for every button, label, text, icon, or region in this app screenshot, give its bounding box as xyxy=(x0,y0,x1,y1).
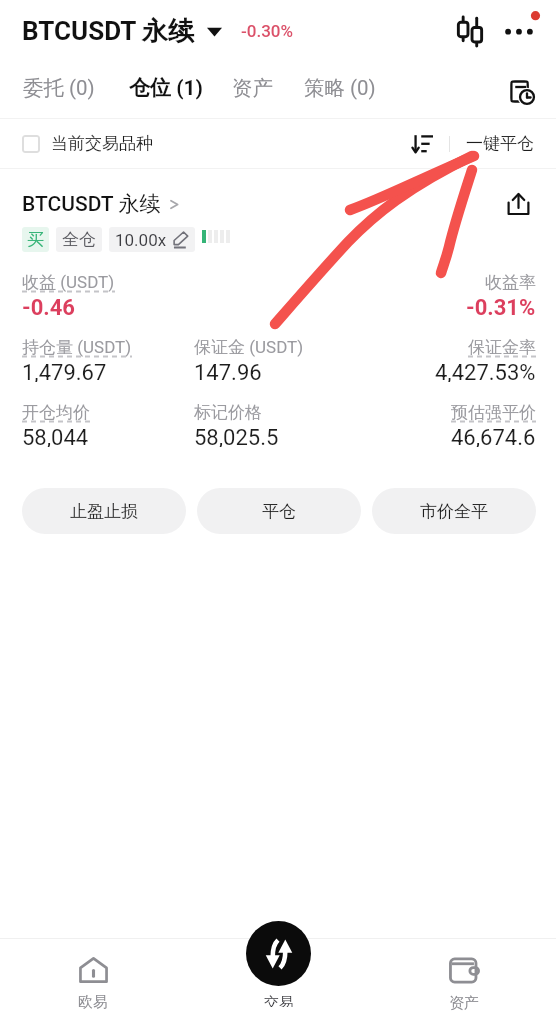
button[interactable]: Sort xyxy=(405,127,439,161)
button[interactable]: 仓位 (1) xyxy=(123,67,209,109)
staticText: 保证金率 xyxy=(468,337,536,358)
button[interactable]: 委托 (0) xyxy=(17,67,101,109)
button[interactable]: 资产 xyxy=(371,939,556,1021)
staticText: 交易 xyxy=(264,994,294,1007)
staticText: -0.30% xyxy=(241,21,294,41)
staticText: 策略 (0) xyxy=(304,75,376,101)
button[interactable]: 资产 xyxy=(226,67,279,109)
staticText: 58,044 xyxy=(22,425,89,447)
staticText: 资产 xyxy=(449,994,479,1013)
button[interactable]: 策略 (0) xyxy=(298,67,382,109)
staticText: BTCUSDT 永续 xyxy=(22,191,161,217)
button[interactable]: 平仓 xyxy=(197,488,361,534)
button[interactable]: Share xyxy=(500,186,536,222)
staticText: -0.46 xyxy=(22,295,75,317)
button[interactable]: 一键平仓 xyxy=(462,127,538,160)
staticText: 收益率 xyxy=(485,272,536,293)
button[interactable]: 10.00x xyxy=(109,227,195,252)
staticText: 收益 (USDT) xyxy=(22,272,115,293)
button[interactable]: Order history xyxy=(502,72,540,110)
staticText: 平仓 xyxy=(262,501,296,522)
button[interactable]: 市价全平 xyxy=(372,488,536,534)
staticText: 58,025.5 xyxy=(194,425,279,447)
staticText: 止盈止损 xyxy=(70,501,138,522)
staticText: 开仓均价 xyxy=(22,402,90,423)
staticText: 4,427.53% xyxy=(435,360,536,382)
staticText: BTCUSDT 永续 xyxy=(22,15,195,48)
staticText: 资产 xyxy=(232,75,273,101)
staticText: 市价全平 xyxy=(420,501,488,522)
staticText: 当前交易品种 xyxy=(51,133,153,154)
staticText: 预估强平价 xyxy=(451,402,536,423)
staticText: -0.31% xyxy=(466,295,536,317)
staticText: 标记价格 xyxy=(194,402,262,423)
staticText: 仓位 (1) xyxy=(129,75,203,101)
staticText: 46,674.6 xyxy=(451,425,536,447)
staticText: 欧易 xyxy=(78,993,108,1012)
staticText: 委托 (0) xyxy=(23,75,95,101)
button[interactable]: BTCUSDT 永续 xyxy=(22,15,222,48)
button[interactable]: BTCUSDT 永续 xyxy=(22,191,180,217)
staticText: 1,479.67 xyxy=(22,360,107,382)
staticText: 10.00x xyxy=(115,230,167,250)
staticText: 买 xyxy=(27,229,44,250)
button[interactable]: Chart xyxy=(450,11,490,51)
button[interactable]: More options xyxy=(500,11,540,51)
staticText: 147.96 xyxy=(194,360,262,382)
staticText: 一键平仓 xyxy=(466,133,534,154)
staticText: 保证金 (USDT) xyxy=(194,337,304,358)
button[interactable]: 当前交易品种 xyxy=(22,133,153,154)
button[interactable]: 止盈止损 xyxy=(22,488,186,534)
staticText: 持仓量 (USDT) xyxy=(22,337,132,358)
staticText: 全仓 xyxy=(62,229,96,250)
button[interactable]: 欧易 xyxy=(0,939,186,1020)
button[interactable]: Trade xyxy=(246,921,311,986)
